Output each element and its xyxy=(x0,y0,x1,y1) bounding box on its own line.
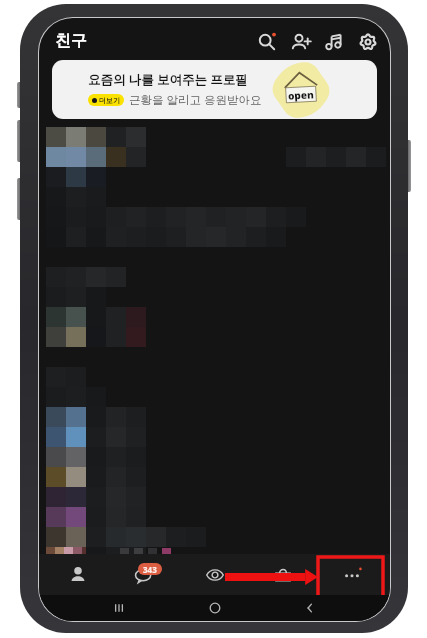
button[interactable]: Home xyxy=(200,595,230,621)
button[interactable]: Settings xyxy=(354,28,382,56)
button[interactable]: Shopping xyxy=(253,554,313,595)
staticText: 343 xyxy=(143,564,157,575)
staticText: 친구 xyxy=(55,31,87,51)
button[interactable]: Recents xyxy=(104,595,134,621)
staticText: 더보기 xyxy=(99,96,120,105)
staticText: 근황을 알리고 응원받아요 xyxy=(129,92,262,108)
staticText: open xyxy=(288,87,314,103)
staticText: 요즘의 나를 보여주는 프로필 xyxy=(88,71,248,88)
button[interactable]: Music xyxy=(321,28,349,56)
button[interactable]: More xyxy=(322,554,382,595)
button[interactable]: View xyxy=(185,554,245,595)
button[interactable]: Search xyxy=(253,28,281,56)
button[interactable]: Friends xyxy=(48,554,108,595)
button[interactable]: Chats xyxy=(116,554,176,595)
button[interactable]: Add friend xyxy=(287,28,315,56)
button[interactable]: 요즘의 나를 보여주는 프로필 xyxy=(52,60,377,119)
button[interactable]: Back xyxy=(295,595,325,621)
